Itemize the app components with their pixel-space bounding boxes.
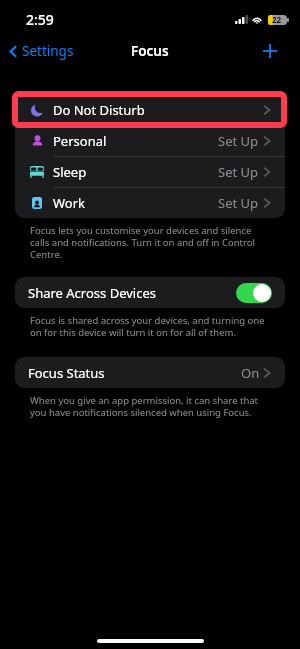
staticText: Focus <box>131 42 169 60</box>
staticText: Share Across Devices <box>28 284 156 302</box>
staticText: When you give an app permission, it can … <box>30 394 270 419</box>
button[interactable]: Share Across Devices toggle <box>236 283 272 303</box>
staticText: Work <box>53 194 86 212</box>
button[interactable]: Do Not Disturb <box>15 94 285 125</box>
button[interactable]: Sleep <box>15 156 285 187</box>
staticText: On <box>241 364 260 382</box>
staticText: Focus is shared across your devices, and… <box>30 314 270 339</box>
staticText: Set Up <box>218 163 259 181</box>
button[interactable]: Focus Status <box>15 357 285 388</box>
button[interactable]: Add Focus <box>249 44 300 58</box>
button[interactable]: Share Across Devices <box>15 277 285 308</box>
button[interactable]: Personal <box>15 125 285 156</box>
staticText: Focus Status <box>28 364 105 382</box>
staticText: Do Not Disturb <box>53 101 145 119</box>
button[interactable]: Work <box>15 187 285 218</box>
staticText: Settings <box>22 42 74 60</box>
staticText: Focus lets you customise your devices an… <box>30 224 270 261</box>
staticText: Set Up <box>218 132 259 150</box>
staticText: Personal <box>53 132 107 150</box>
staticText: 2:59 <box>26 10 54 29</box>
staticText: 22 <box>272 14 282 25</box>
button[interactable]: Settings <box>0 42 82 60</box>
staticText: Set Up <box>218 194 259 212</box>
staticText: Sleep <box>53 163 87 181</box>
